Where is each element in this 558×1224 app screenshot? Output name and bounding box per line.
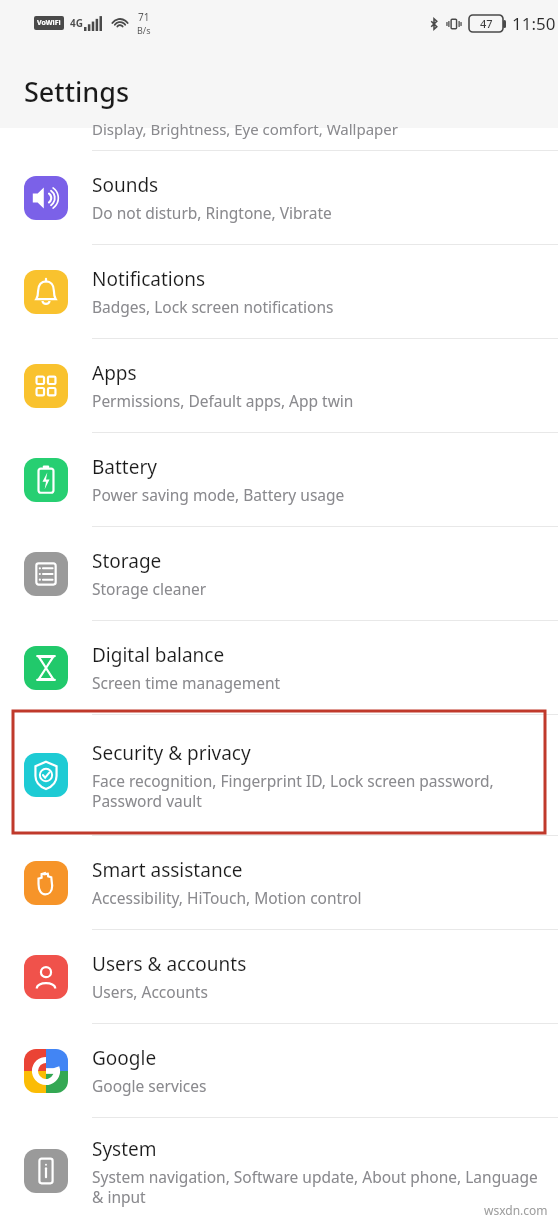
staticText: Google services [92,1075,207,1096]
staticText: VoWiFi [37,18,61,28]
button[interactable]: Sounds [0,151,558,244]
staticText: Battery [92,454,157,480]
button[interactable]: Notifications [0,245,558,338]
staticText: Storage [92,548,162,574]
staticText: B/s [137,24,151,36]
staticText: System [92,1136,157,1162]
staticText: Accessibility, HiTouch, Motion control [92,887,362,908]
staticText: 71 [138,10,150,24]
staticText: Smart assistance [92,857,243,883]
staticText: Face recognition, Fingerprint ID, Lock s… [92,770,544,811]
button[interactable]: Google [0,1024,558,1117]
staticText: Power saving mode, Battery usage [92,484,345,505]
button[interactable]: Smart assistance [0,836,558,929]
button[interactable]: Battery [0,433,558,526]
staticText: Digital balance [92,642,225,668]
button[interactable]: Storage [0,527,558,620]
staticText: Google [92,1045,157,1071]
staticText: Do not disturb, Ringtone, Vibrate [92,202,332,223]
button[interactable]: System [0,1118,558,1224]
button[interactable]: Security & privacy [0,715,558,835]
button[interactable]: Digital balance [0,621,558,714]
staticText: wsxdn.com [484,1202,548,1218]
staticText: 47 [480,16,493,31]
staticText: Apps [92,360,137,386]
button[interactable]: Users & accounts [0,930,558,1023]
button[interactable]: Apps [0,339,558,432]
staticText: Settings [24,73,130,110]
staticText: Users, Accounts [92,981,208,1002]
staticText: Notifications [92,266,206,292]
staticText: Badges, Lock screen notifications [92,296,334,317]
staticText: Permissions, Default apps, App twin [92,390,354,411]
staticText: Security & privacy [92,740,251,766]
staticText: System navigation, Software update, Abou… [92,1166,544,1207]
staticText: Storage cleaner [92,578,207,599]
staticText: Sounds [92,172,159,198]
staticText: Users & accounts [92,951,247,977]
staticText: 4G [70,16,83,30]
staticText: 11:50 [512,12,556,35]
staticText: Display, Brightness, Eye comfort, Wallpa… [92,119,398,139]
staticText: Screen time management [92,672,281,693]
